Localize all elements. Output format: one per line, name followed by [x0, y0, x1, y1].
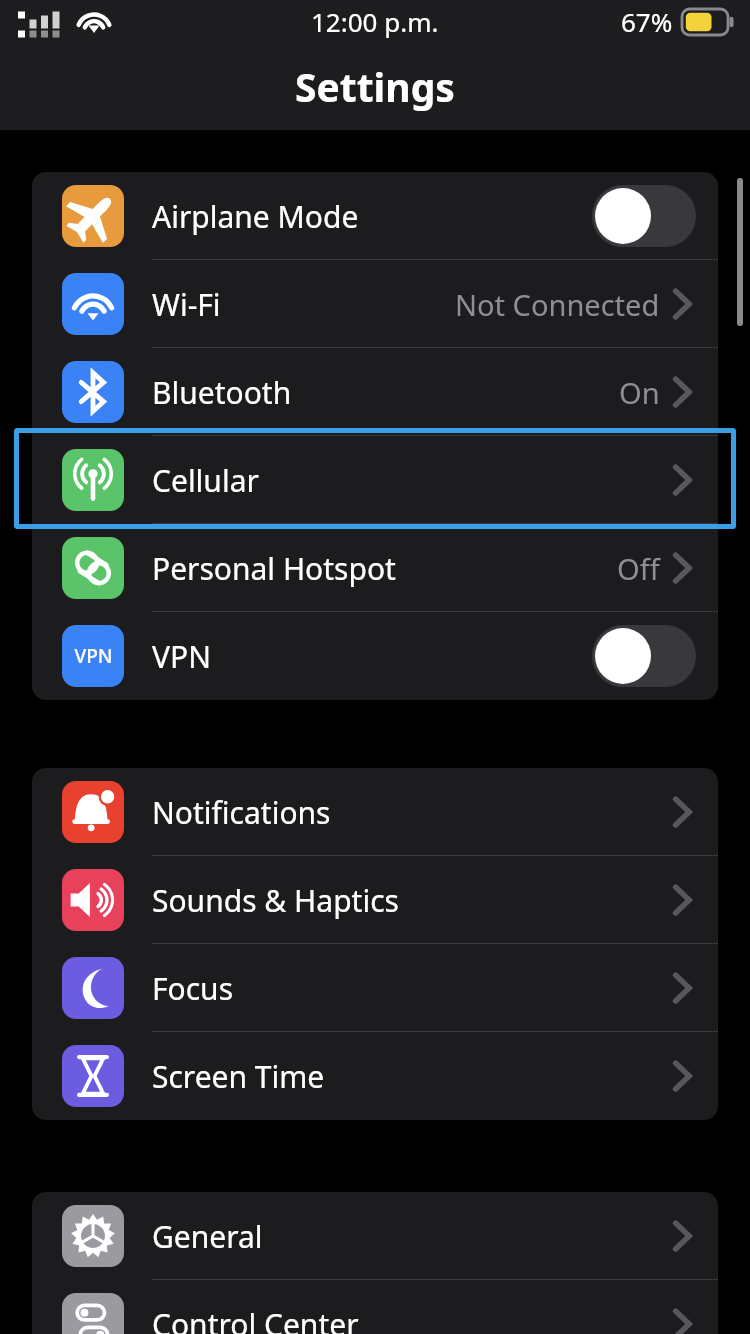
staticText: 12:00 p.m. — [311, 4, 439, 39]
button[interactable]: Control Center — [32, 1280, 718, 1334]
staticText: Bluetooth — [152, 372, 292, 413]
staticText: Airplane Mode — [152, 196, 359, 237]
button[interactable]: Notifications — [32, 768, 718, 856]
button[interactable]: Sounds & Haptics — [32, 856, 718, 944]
staticText: Not Connected — [455, 285, 660, 324]
staticText: Notifications — [152, 792, 331, 833]
button[interactable]: Wi-Fi — [32, 260, 718, 348]
staticText: Focus — [152, 968, 234, 1009]
staticText: Off — [617, 549, 660, 588]
button[interactable]: VPN — [592, 625, 696, 687]
staticText: Personal Hotspot — [152, 548, 396, 589]
staticText: Cellular — [152, 460, 259, 501]
staticText: Sounds & Haptics — [152, 880, 399, 921]
staticText: Screen Time — [152, 1056, 325, 1097]
button[interactable]: Airplane Mode — [32, 172, 718, 260]
staticText: VPN — [152, 636, 211, 677]
button[interactable]: Bluetooth — [32, 348, 718, 436]
staticText: Control Center — [152, 1304, 359, 1334]
staticText: 67% — [621, 4, 673, 39]
button[interactable]: Airplane Mode — [592, 185, 696, 247]
staticText: On — [619, 373, 660, 412]
button[interactable]: VPN — [32, 612, 718, 700]
button[interactable]: Screen Time — [32, 1032, 718, 1120]
staticText: Settings — [295, 60, 455, 113]
button[interactable]: General — [32, 1192, 718, 1280]
button[interactable]: Cellular — [32, 436, 718, 524]
button[interactable]: Personal Hotspot — [32, 524, 718, 612]
staticText: VPN — [74, 643, 113, 669]
button[interactable]: Focus — [32, 944, 718, 1032]
staticText: General — [152, 1216, 263, 1257]
staticText: Wi-Fi — [152, 284, 221, 325]
